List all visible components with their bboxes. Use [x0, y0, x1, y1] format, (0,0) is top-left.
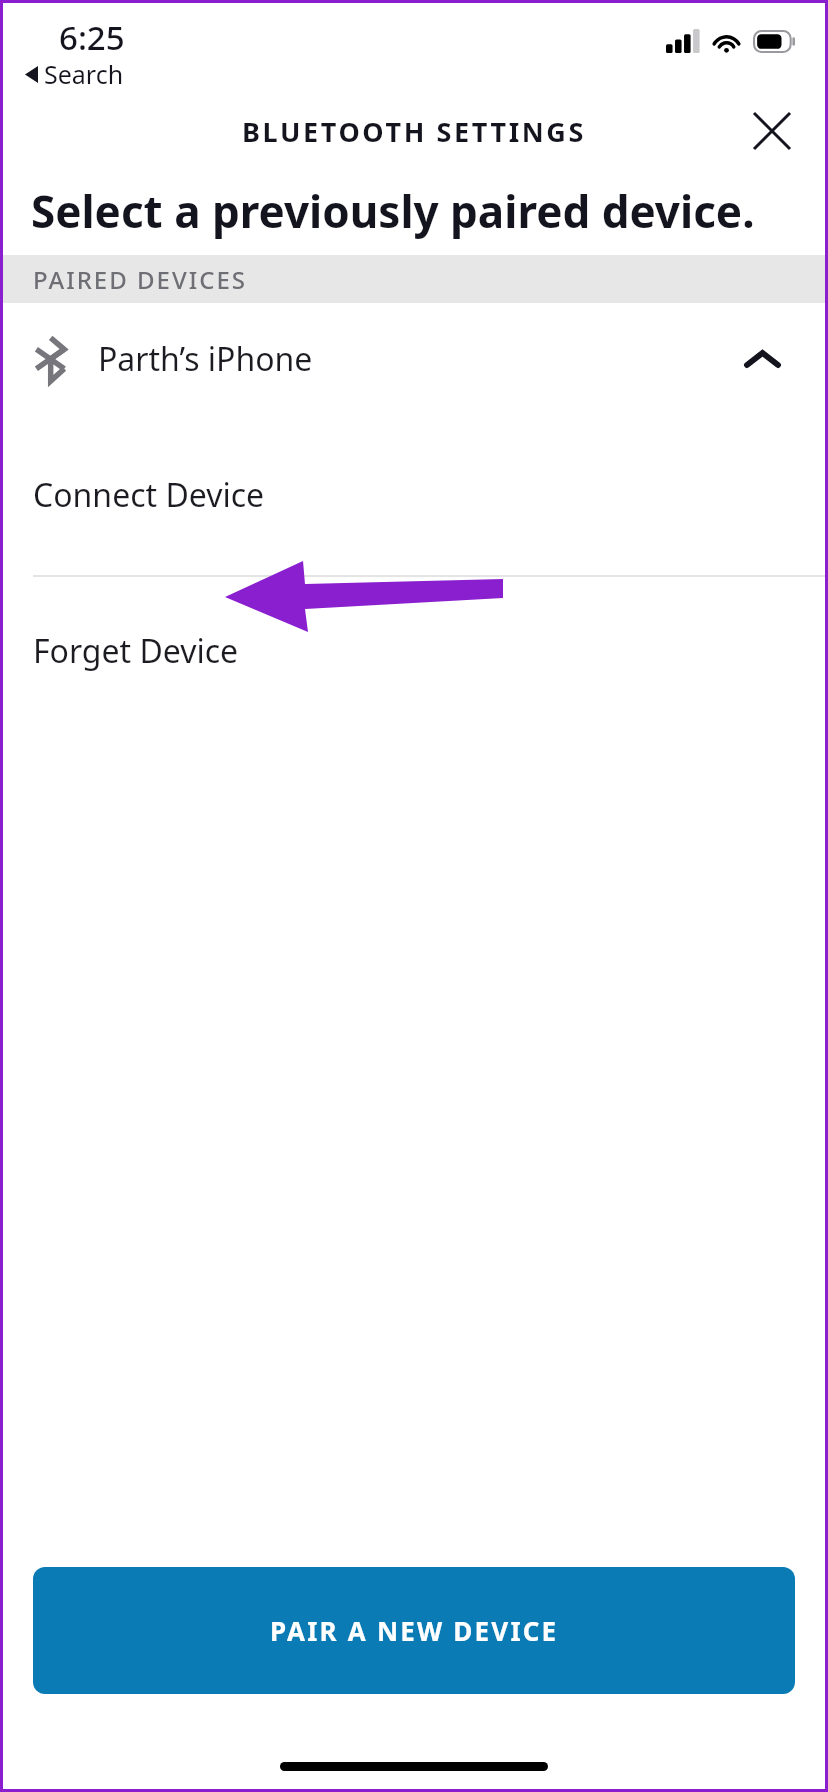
button[interactable]: Close — [739, 98, 805, 164]
staticText: Search — [44, 57, 124, 91]
staticText: 6:25 — [59, 15, 125, 60]
staticText: Connect Device — [33, 473, 265, 517]
staticText: Parth’s iPhone — [98, 337, 313, 381]
staticText: PAIRED DEVICES — [33, 263, 247, 296]
button[interactable]: Forget Device — [3, 577, 825, 725]
button[interactable]: Connect Device — [3, 415, 825, 575]
other: Collapse — [737, 334, 787, 384]
staticText: Select a previously paired device. — [31, 181, 755, 241]
staticText: PAIR A NEW DEVICE — [270, 1613, 559, 1648]
button[interactable]: PAIR A NEW DEVICE — [33, 1567, 795, 1694]
staticText: Forget Device — [33, 629, 239, 673]
button[interactable]: Parth’s iPhone — [3, 303, 825, 415]
staticText: BLUETOOTH SETTINGS — [242, 113, 586, 150]
